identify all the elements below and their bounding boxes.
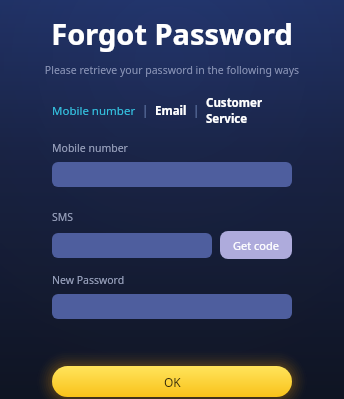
staticText: | <box>187 103 206 119</box>
button[interactable]: Get code <box>220 231 292 259</box>
button[interactable]: Text input field <box>52 233 212 258</box>
button[interactable]: Text input field <box>52 162 292 187</box>
staticText: New Password <box>52 273 344 287</box>
staticText: Please retrieve your password in the fol… <box>0 63 344 77</box>
staticText: Mobile number <box>52 103 136 119</box>
staticText: SMS <box>52 210 344 224</box>
staticText: | <box>136 103 155 119</box>
button[interactable]: OK <box>52 366 292 397</box>
button[interactable]: Email <box>155 103 187 119</box>
button[interactable]: Text input field <box>52 294 292 319</box>
staticText: Email <box>155 103 187 119</box>
staticText: Mobile number <box>52 141 344 155</box>
staticText: OK <box>164 374 181 390</box>
button[interactable]: Mobile number <box>52 103 136 119</box>
staticText: Get code <box>233 238 279 253</box>
staticText: Forgot Password <box>0 14 344 53</box>
button[interactable]: Customer Service <box>206 95 297 127</box>
staticText: Customer Service <box>206 95 297 127</box>
